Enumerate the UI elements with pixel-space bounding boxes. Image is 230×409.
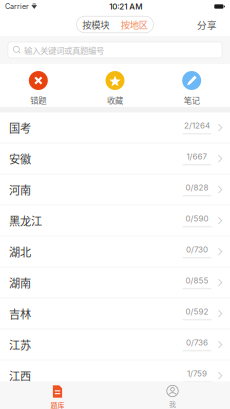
staticText: 我 [169, 399, 176, 409]
staticText: 湖南 [9, 274, 31, 291]
staticText: 按地区 [121, 18, 148, 31]
staticText: 题库 [50, 400, 64, 409]
button[interactable]: 吉林 [0, 298, 230, 329]
staticText: 湖北 [9, 243, 31, 260]
staticText: 0/730 [186, 245, 208, 254]
staticText: 江苏 [9, 336, 31, 353]
button[interactable]: 我 [115, 381, 230, 409]
staticText: Carrier [5, 2, 29, 11]
button[interactable]: 黑龙江 [0, 205, 230, 236]
button[interactable]: 输入关键词或真题编号 [0, 36, 230, 64]
staticText: 收藏 [107, 94, 123, 106]
button[interactable]: 题库 [0, 381, 115, 409]
staticText: 安徽 [9, 150, 31, 167]
staticText: 河南 [9, 181, 31, 198]
button[interactable]: 国考 [0, 112, 230, 143]
staticText: 2/1264 [184, 121, 210, 130]
button[interactable]: 笔记 [153, 70, 230, 106]
button[interactable]: 错题 [0, 70, 77, 106]
staticText: 分享 [197, 17, 217, 31]
button[interactable]: 河南 [0, 174, 230, 205]
staticText: 0/592 [185, 307, 208, 316]
button[interactable]: 按模块 [76, 16, 115, 33]
staticText: 江西 [9, 367, 31, 384]
staticText: 输入关键词或真题编号 [24, 44, 104, 56]
staticText: 0/590 [185, 214, 208, 223]
staticText: 国考 [9, 119, 31, 136]
button[interactable]: 按地区 [115, 16, 153, 33]
staticText: 0/736 [186, 338, 208, 347]
staticText: 1/759 [187, 369, 207, 378]
staticText: 吉林 [9, 305, 31, 322]
staticText: 黑龙江 [9, 212, 42, 229]
button[interactable]: 湖南 [0, 267, 230, 298]
button[interactable]: 湖北 [0, 236, 230, 267]
staticText: 按模块 [82, 18, 109, 31]
button[interactable]: 安徽 [0, 143, 230, 174]
staticText: 0/828 [185, 183, 208, 192]
button[interactable]: 收藏 [77, 70, 153, 106]
button[interactable]: 江西 [0, 360, 230, 391]
staticText: 1/667 [186, 152, 207, 161]
button[interactable]: 江苏 [0, 329, 230, 360]
button[interactable]: 分享 [192, 15, 222, 33]
staticText: 10:21 AM [109, 2, 142, 11]
staticText: 笔记 [184, 94, 200, 106]
staticText: 0/855 [185, 276, 208, 285]
staticText: 错题 [30, 94, 46, 106]
